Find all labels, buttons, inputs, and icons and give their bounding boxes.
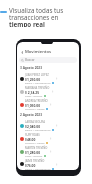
button[interactable]: JAIME TREVIÑO (20, 158, 76, 170)
staticText: JUAN PEREZ LOPEZ (25, 73, 49, 77)
staticText: Banco • Transferencia (25, 81, 51, 84)
staticText: $1,050.00 (25, 103, 41, 107)
staticText: Pago • Servicio (25, 154, 43, 157)
staticText: MARTIN TREVIÑO (25, 146, 48, 150)
button[interactable]: LARISA SEGURA (20, 119, 76, 132)
staticText: tiempo real (9, 20, 45, 27)
staticText: SURY RIVAS (25, 133, 40, 137)
staticText: $1,280.00 (25, 150, 41, 154)
staticText: transacciones en (9, 13, 59, 20)
button[interactable]: SURY RIVAS (20, 132, 76, 145)
staticText: $1,250.00 (25, 77, 41, 81)
button[interactable]: MARIANA TREVIÑO (20, 85, 76, 98)
staticText: JAIME TREVIÑO (25, 159, 45, 163)
staticText: Banco • Transferencia (25, 167, 51, 170)
staticText: Banco • Transferencia (25, 128, 51, 131)
staticText: $76.00 (25, 163, 36, 167)
staticText: 3 Agosto 2023 (20, 66, 42, 70)
staticText: $ 2,34.25 (25, 90, 40, 94)
button[interactable]: ANDREA TREVIÑO (20, 98, 76, 111)
staticText: MARIANA TREVIÑO (25, 86, 50, 90)
staticText: ANDREA TREVIÑO (25, 99, 48, 103)
staticText: Compra • Tienda (25, 107, 45, 110)
button[interactable]: MARTIN TREVIÑO (20, 145, 76, 158)
staticText: Visualiza todas tus (9, 6, 64, 13)
staticText: Pago • Servicio (25, 94, 43, 97)
staticText: $2,040.00 (25, 124, 41, 128)
button[interactable]: Buscar (19, 57, 77, 63)
staticText: $48.00 (25, 137, 36, 141)
staticText: LARISA SEGURA (25, 120, 45, 124)
staticText: Compra • Tienda (25, 141, 45, 144)
staticText: 2 Agosto 2023 (20, 113, 42, 117)
button[interactable]: JUAN PEREZ LOPEZ (20, 72, 76, 85)
staticText: Buscar (25, 58, 35, 62)
staticText: Movimientos (25, 49, 51, 55)
button[interactable]: Back (20, 50, 24, 54)
